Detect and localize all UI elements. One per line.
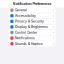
button[interactable]: Privacy & Security (8, 19, 55, 24)
staticText: Display & Brightness (15, 25, 48, 29)
button[interactable]: Notifications (8, 35, 55, 41)
staticText: Control Center (15, 31, 37, 34)
button[interactable]: General (8, 7, 55, 13)
staticText: Sounds & Haptics (15, 42, 43, 46)
button[interactable]: Accessibility (8, 13, 55, 19)
staticText: Notifications (15, 36, 35, 40)
staticText: › (53, 13, 54, 18)
staticText: › (53, 8, 54, 12)
staticText: Privacy & Security (15, 19, 44, 23)
button[interactable]: Display & Brightness (8, 24, 55, 30)
staticText: › (53, 36, 54, 40)
staticText: › (53, 30, 54, 35)
staticText: Notification Preferences (12, 2, 51, 6)
staticText: General (15, 8, 27, 12)
staticText: › (53, 25, 54, 29)
staticText: › (53, 41, 54, 46)
button[interactable]: Control Center (8, 30, 55, 35)
staticText: Accessibility (15, 14, 36, 18)
staticText: › (53, 19, 54, 24)
button[interactable]: Sounds & Haptics (8, 41, 55, 46)
